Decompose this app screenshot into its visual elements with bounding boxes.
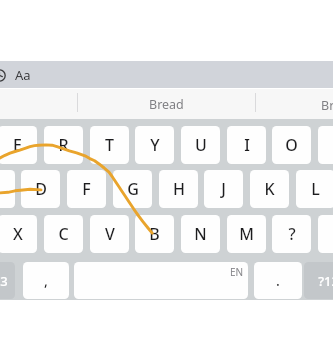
button[interactable]: S <box>0 170 15 208</box>
button[interactable]: B <box>135 215 174 253</box>
button[interactable]: N <box>181 215 220 253</box>
button[interactable]: I <box>227 126 266 164</box>
staticText: L <box>311 178 320 200</box>
button[interactable]: O <box>272 126 311 164</box>
button[interactable]: K <box>250 170 289 208</box>
button[interactable]: E <box>0 126 37 164</box>
staticText: Y <box>150 134 160 156</box>
button[interactable]: Bread <box>78 89 255 120</box>
staticText: R <box>58 134 69 156</box>
staticText: M <box>239 223 254 245</box>
staticText: ? <box>288 223 296 245</box>
button[interactable]: V <box>90 215 129 253</box>
staticText: , <box>44 271 48 290</box>
button[interactable]: ?12 <box>304 262 333 299</box>
button[interactable]: Y <box>135 126 174 164</box>
button[interactable]: D <box>21 170 60 208</box>
button[interactable]: Recent emoji <box>0 69 6 82</box>
button[interactable]: J <box>204 170 243 208</box>
staticText: Aa <box>15 66 31 84</box>
staticText: D <box>35 178 47 200</box>
staticText: J <box>221 178 226 200</box>
button[interactable]: ! <box>318 215 333 253</box>
button[interactable]: X <box>0 215 37 253</box>
button[interactable]: , <box>23 262 69 299</box>
button[interactable]: . <box>254 262 302 299</box>
button[interactable]: C <box>44 215 83 253</box>
staticText: Bre <box>321 97 333 114</box>
button[interactable]: M <box>227 215 266 253</box>
staticText: H <box>173 178 185 200</box>
button[interactable]: F <box>67 170 106 208</box>
staticText: 123 <box>0 272 8 290</box>
button[interactable]: 123 <box>0 262 15 299</box>
button[interactable] <box>74 262 248 299</box>
staticText: I <box>244 134 250 156</box>
staticText: ?12 <box>318 272 333 290</box>
staticText: EN <box>230 265 244 279</box>
staticText: E <box>13 134 22 156</box>
staticText: N <box>194 223 207 245</box>
staticText: U <box>195 134 207 156</box>
button[interactable]: H <box>159 170 198 208</box>
staticText: X <box>13 223 23 245</box>
button[interactable]: G <box>113 170 152 208</box>
staticText: C <box>58 223 69 245</box>
staticText: K <box>264 178 275 200</box>
staticText: B <box>149 223 160 245</box>
button[interactable]: T <box>90 126 129 164</box>
button[interactable]: U <box>181 126 220 164</box>
staticText: T <box>105 134 114 156</box>
button[interactable]: ? <box>272 215 311 253</box>
staticText: F <box>82 178 91 200</box>
staticText: Bread <box>149 96 184 113</box>
button[interactable]: R <box>44 126 83 164</box>
staticText: V <box>105 223 115 245</box>
staticText: . <box>276 271 280 290</box>
staticText: G <box>127 178 139 200</box>
staticText: O <box>285 134 298 156</box>
button[interactable]: P <box>318 126 333 164</box>
button[interactable]: L <box>296 170 333 208</box>
